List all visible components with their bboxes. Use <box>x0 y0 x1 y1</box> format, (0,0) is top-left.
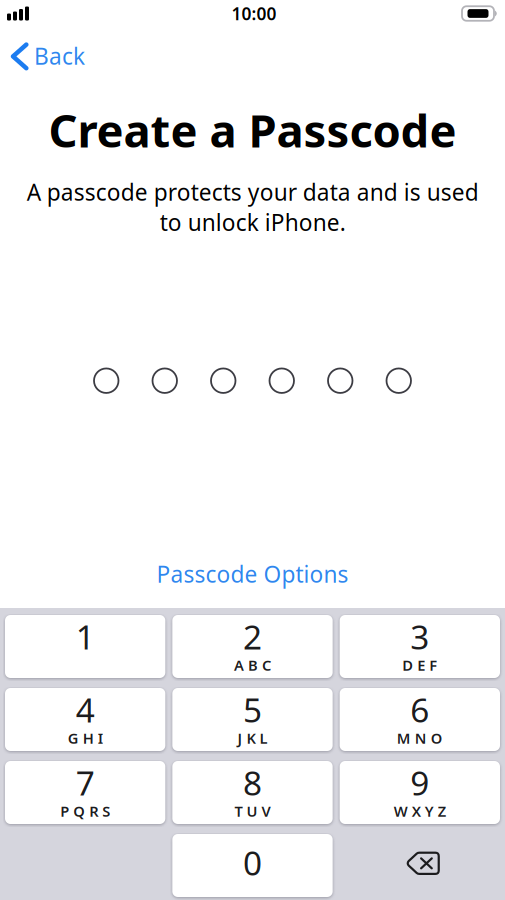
button[interactable]: Delete <box>340 834 500 897</box>
staticText: Back <box>34 41 85 71</box>
staticText: 4 <box>76 687 95 732</box>
staticText: T U V <box>234 801 270 821</box>
staticText: 1 <box>76 614 95 659</box>
button[interactable]: 7 <box>5 761 165 824</box>
staticText: 7 <box>76 760 95 805</box>
button[interactable]: 0 <box>172 834 333 897</box>
staticText: 0 <box>243 840 262 885</box>
button[interactable]: 5 <box>172 688 333 751</box>
button[interactable]: 9 <box>340 761 500 824</box>
staticText: A passcode protects your data and is use… <box>26 177 478 237</box>
staticText: J K L <box>237 728 267 748</box>
button[interactable]: Passcode Options <box>140 552 364 596</box>
button[interactable]: 8 <box>172 761 333 824</box>
staticText: G H I <box>68 728 103 748</box>
button[interactable]: 3 <box>340 615 500 678</box>
staticText: 3 <box>410 614 429 659</box>
staticText: 9 <box>410 760 429 805</box>
button[interactable]: Back <box>0 27 130 73</box>
staticText: 2 <box>243 614 262 659</box>
staticText: W X Y Z <box>394 801 446 821</box>
staticText: A B C <box>234 655 271 675</box>
staticText: Create a Passcode <box>48 100 456 160</box>
staticText: 5 <box>243 687 262 732</box>
button[interactable]: 2 <box>172 615 333 678</box>
staticText: 8 <box>243 760 262 805</box>
staticText: D E F <box>402 655 437 675</box>
staticText: 10:00 <box>231 2 276 25</box>
button[interactable]: 6 <box>340 688 500 751</box>
staticText: 6 <box>410 687 429 732</box>
button[interactable]: 4 <box>5 688 165 751</box>
button[interactable]: 1 <box>5 615 165 678</box>
staticText: M N O <box>397 728 443 748</box>
staticText: Passcode Options <box>156 559 348 589</box>
staticText: P Q R S <box>60 801 110 821</box>
